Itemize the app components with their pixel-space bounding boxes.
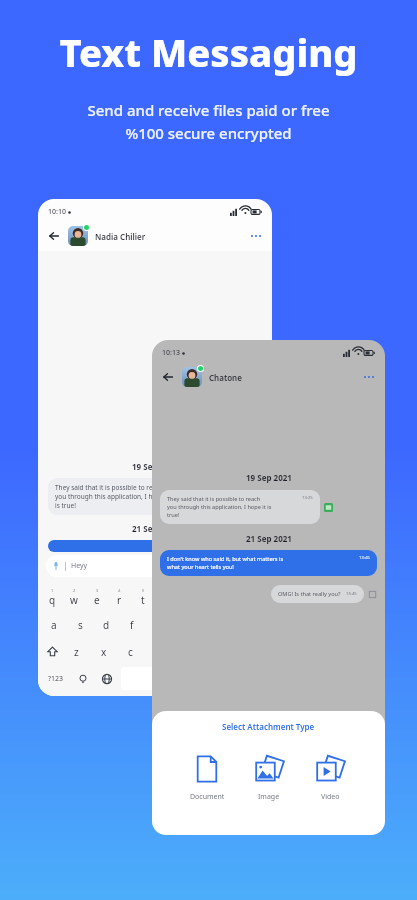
staticText: Image (258, 792, 280, 802)
staticText: 1 (51, 588, 54, 593)
staticText: 19 Sep 2021 (132, 461, 178, 472)
button[interactable]: f (119, 611, 144, 638)
button[interactable]: z (63, 638, 90, 665)
button[interactable]: 2 (63, 584, 85, 611)
button[interactable]: a (41, 611, 67, 638)
button[interactable]: Document (186, 748, 228, 804)
staticText: e (94, 593, 100, 607)
button[interactable]: Space (121, 667, 233, 690)
button[interactable]: Shift (41, 638, 63, 665)
staticText: OMG! Is that really you? (278, 590, 341, 598)
staticText: 15:45 (346, 591, 357, 597)
button[interactable]: More options (248, 228, 264, 244)
staticText: Select Attachment Type (222, 721, 315, 732)
staticText: 21 Sep 2021 (246, 533, 292, 544)
staticText: 10:10 (48, 207, 66, 217)
button[interactable]: Video (309, 748, 351, 804)
button[interactable]: I don't know who said it, but what matte… (55, 545, 191, 547)
staticText: Document (190, 792, 225, 802)
staticText: They said that it is possible to reach y… (55, 483, 171, 510)
button[interactable]: c (117, 638, 143, 665)
staticText: %100 secure encrypted (0, 123, 417, 143)
staticText: 2 (73, 588, 76, 593)
button[interactable]: ?123 (41, 665, 71, 692)
staticText: 5 (142, 588, 145, 593)
button[interactable]: OMG! Is that really you? (278, 590, 357, 598)
staticText: 3 (96, 588, 99, 593)
staticText: z (74, 645, 79, 659)
button[interactable]: 3 (85, 584, 108, 611)
staticText: 13:45 (359, 555, 370, 561)
staticText: w (70, 593, 78, 607)
button[interactable]: Heyy (52, 555, 258, 577)
staticText: I don't know who said it, but what matte… (167, 555, 284, 563)
button[interactable]: d (93, 611, 119, 638)
staticText: They said that it is possible to reach (167, 495, 261, 503)
button[interactable]: Image (248, 748, 290, 804)
button[interactable]: v (143, 638, 169, 665)
button[interactable]: 1 (41, 584, 63, 611)
staticText: 4 (118, 588, 121, 593)
staticText: Heyy (71, 561, 88, 571)
button[interactable]: Emoji (71, 665, 95, 692)
button[interactable]: They said that it is possible to reach (167, 495, 313, 519)
button[interactable]: Language (95, 665, 119, 692)
staticText: a (51, 618, 57, 632)
staticText: s (78, 618, 83, 632)
button[interactable]: Back (160, 369, 176, 385)
button[interactable]: g (144, 611, 169, 638)
staticText: 19 Sep 2021 (246, 472, 292, 483)
staticText: what your heart tells you! (167, 563, 234, 571)
staticText: c (128, 645, 133, 659)
staticText: I don't know who said it, but what matte… (55, 545, 191, 547)
staticText: Chatone (209, 372, 242, 383)
button[interactable]: More options (361, 369, 377, 385)
button[interactable]: x (90, 638, 117, 665)
button[interactable]: 4 (108, 584, 131, 611)
staticText: f (130, 618, 134, 632)
staticText: x (101, 645, 107, 659)
button[interactable]: s (67, 611, 93, 638)
button[interactable]: I don't know who said it, but what matte… (167, 555, 370, 571)
button[interactable]: 5 (131, 584, 154, 611)
staticText: 13:25 (302, 495, 313, 501)
staticText: Video (321, 792, 340, 802)
button[interactable]: They said that it is possible to reach y… (55, 483, 171, 510)
staticText: ?123 (48, 674, 64, 684)
staticText: t (141, 593, 145, 607)
button[interactable]: Back (46, 228, 62, 244)
staticText: d (103, 618, 110, 632)
staticText: you through this application, I hope it … (167, 503, 272, 519)
